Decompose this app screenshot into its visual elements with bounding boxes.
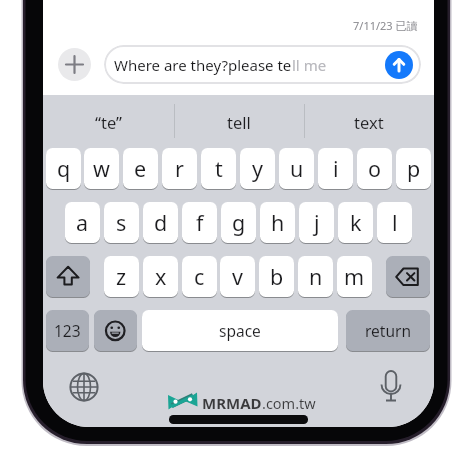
staticText: k	[350, 208, 362, 237]
staticText: d	[154, 208, 168, 237]
staticText: r	[175, 154, 184, 183]
button[interactable]: o	[357, 148, 392, 189]
button[interactable]: e	[123, 148, 158, 189]
button[interactable]: l	[377, 202, 412, 243]
staticText: i	[333, 154, 339, 183]
staticText: t	[215, 154, 223, 183]
button[interactable]: s	[104, 202, 139, 243]
staticText: z	[116, 262, 127, 291]
staticText: j	[314, 208, 320, 237]
staticText: ll me	[292, 55, 327, 75]
staticText: “te”	[95, 111, 122, 133]
button[interactable]: g	[221, 202, 256, 243]
staticText: x	[155, 262, 167, 291]
staticText: g	[232, 208, 246, 237]
staticText: s	[116, 208, 127, 237]
staticText: text	[354, 111, 384, 133]
staticText: .com.tw	[262, 393, 316, 413]
staticText: c	[194, 262, 205, 291]
button[interactable]: tell	[174, 95, 304, 148]
button[interactable]: h	[260, 202, 295, 243]
button[interactable]: q	[46, 148, 81, 189]
button[interactable]: r	[162, 148, 197, 189]
button[interactable]: b	[259, 256, 294, 297]
button[interactable]: p	[396, 148, 431, 189]
staticText: q	[57, 154, 71, 183]
button[interactable]	[46, 256, 90, 297]
staticText: MRMAD	[202, 393, 262, 413]
staticText: return	[365, 320, 411, 341]
button[interactable]: text	[304, 95, 434, 148]
button[interactable]: x	[143, 256, 178, 297]
button[interactable]: Where are they?please te	[104, 45, 421, 84]
button[interactable]	[58, 48, 91, 81]
button[interactable]: m	[337, 256, 372, 297]
button[interactable]: d	[143, 202, 178, 243]
staticText: 7/11/23 已讀	[353, 18, 418, 33]
button[interactable]: a	[65, 202, 100, 243]
staticText: Where are they?please te	[114, 55, 292, 75]
staticText: e	[134, 154, 147, 183]
staticText: u	[290, 154, 304, 183]
button[interactable]: n	[298, 256, 333, 297]
button[interactable]: return	[346, 310, 430, 351]
staticText: v	[232, 262, 243, 291]
button[interactable]: t	[201, 148, 236, 189]
button[interactable]: v	[220, 256, 255, 297]
button[interactable]: u	[279, 148, 314, 189]
button[interactable]: y	[240, 148, 275, 189]
staticText: space	[219, 320, 261, 341]
staticText: o	[368, 154, 382, 183]
button[interactable]: “te”	[43, 95, 174, 148]
button[interactable]	[385, 51, 413, 79]
button[interactable]	[386, 256, 430, 297]
staticText: tell	[227, 111, 251, 133]
staticText: f	[196, 208, 204, 237]
staticText: w	[93, 154, 110, 183]
button[interactable]: i	[318, 148, 353, 189]
button[interactable]: space	[142, 310, 338, 351]
button[interactable]	[376, 368, 406, 404]
button[interactable]: c	[182, 256, 217, 297]
staticText: n	[309, 262, 323, 291]
button[interactable]	[94, 310, 137, 351]
button[interactable]	[69, 372, 99, 402]
button[interactable]: z	[104, 256, 139, 297]
staticText: p	[407, 154, 421, 183]
staticText: y	[252, 154, 263, 183]
staticText: h	[271, 208, 285, 237]
button[interactable]: f	[182, 202, 217, 243]
button[interactable]: w	[84, 148, 119, 189]
staticText: l	[392, 208, 398, 237]
staticText: 123	[54, 320, 81, 341]
staticText: a	[76, 208, 89, 237]
button[interactable]: j	[299, 202, 334, 243]
button[interactable]: 123	[46, 310, 89, 351]
button[interactable]: k	[338, 202, 373, 243]
staticText: m	[344, 262, 365, 291]
staticText: b	[270, 262, 284, 291]
